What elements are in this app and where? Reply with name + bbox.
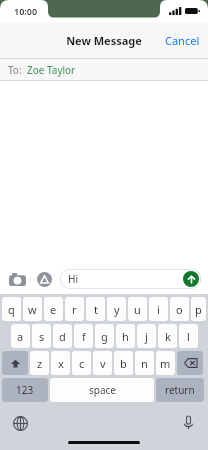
staticText: New Message (66, 33, 142, 48)
button[interactable]: Hi (60, 269, 201, 289)
staticText: q (8, 302, 15, 317)
button[interactable]: v (93, 351, 112, 375)
button[interactable]: w (23, 297, 42, 321)
staticText: Hi (68, 272, 78, 286)
staticText: t (94, 302, 98, 317)
staticText: m (160, 356, 171, 371)
staticText: k (165, 329, 171, 344)
button[interactable]: x (51, 351, 70, 375)
button[interactable]: b (114, 351, 133, 375)
staticText: Zoe Taylor (27, 63, 76, 77)
button[interactable]: h (116, 324, 135, 348)
button[interactable]: d (53, 324, 72, 348)
staticText: o (176, 302, 183, 317)
button[interactable]: u (128, 297, 147, 321)
staticText: s (39, 329, 45, 344)
staticText: v (100, 356, 106, 371)
button[interactable]: return (156, 378, 204, 402)
staticText: space (89, 383, 116, 397)
button[interactable]: j (137, 324, 156, 348)
staticText: y (114, 302, 120, 317)
button[interactable]: y (107, 297, 126, 321)
staticText: To: (8, 63, 22, 77)
staticText: l (187, 329, 190, 344)
button[interactable]: o (170, 297, 189, 321)
button[interactable]: z (30, 351, 49, 375)
staticText: z (37, 356, 43, 371)
staticText: a (17, 329, 24, 344)
button[interactable]: 123 (2, 378, 48, 402)
button[interactable]: Backspace (177, 351, 203, 375)
button[interactable]: a (11, 324, 30, 348)
button[interactable]: m (156, 351, 175, 375)
button[interactable]: App Store (34, 269, 54, 289)
staticText: d (59, 329, 66, 344)
staticText: p (195, 302, 202, 317)
button[interactable]: Shift (2, 351, 28, 375)
button[interactable]: i (149, 297, 168, 321)
staticText: w (28, 302, 37, 317)
button[interactable]: k (158, 324, 177, 348)
staticText: e (50, 302, 57, 317)
staticText: b (120, 356, 127, 371)
button[interactable]: l (179, 324, 198, 348)
staticText: n (141, 356, 148, 371)
button[interactable]: Camera (7, 269, 27, 289)
button[interactable]: p (191, 297, 206, 321)
button[interactable]: q (2, 297, 21, 321)
button[interactable]: space (50, 378, 154, 402)
button[interactable]: g (95, 324, 114, 348)
button[interactable]: e (44, 297, 63, 321)
staticText: j (145, 329, 148, 344)
staticText: i (157, 302, 160, 317)
staticText: r (72, 302, 77, 317)
staticText: u (134, 302, 141, 317)
button[interactable]: Send (183, 271, 199, 287)
button[interactable]: t (86, 297, 105, 321)
staticText: x (58, 356, 64, 371)
button[interactable]: Dictate (178, 413, 198, 433)
button[interactable]: r (65, 297, 84, 321)
staticText: c (79, 356, 85, 371)
button[interactable]: Switch keyboard language (10, 413, 30, 433)
staticText: 123 (16, 383, 34, 397)
staticText: Cancel (165, 33, 200, 48)
button[interactable]: To: (0, 59, 208, 80)
button[interactable]: n (135, 351, 154, 375)
button[interactable]: f (74, 324, 93, 348)
staticText: f (82, 329, 86, 344)
button[interactable]: c (72, 351, 91, 375)
staticText: g (101, 329, 108, 344)
button[interactable]: s (32, 324, 51, 348)
button[interactable]: Cancel (157, 27, 208, 54)
staticText: h (122, 329, 129, 344)
staticText: return (165, 383, 195, 397)
staticText: 10:00 (14, 5, 38, 17)
